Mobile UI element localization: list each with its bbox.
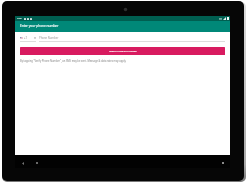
staticText: VERIFY PHONE NUMBER	[109, 49, 137, 52]
staticText: Phone Number	[39, 36, 59, 40]
staticText: 7:45	[17, 17, 22, 20]
button[interactable]: Recent apps	[219, 159, 227, 167]
staticText: Enter your phone number	[20, 24, 59, 28]
button[interactable]: VERIFY PHONE NUMBER	[20, 47, 225, 55]
staticText: By tapping "Verify Phone Number", an SMS…	[20, 59, 127, 62]
staticText: +1	[24, 36, 28, 40]
button[interactable]: +1	[20, 36, 36, 42]
button[interactable]: Phone Number	[39, 36, 225, 42]
button[interactable]: Home	[33, 159, 41, 167]
other: Select country code	[34, 37, 36, 39]
button[interactable]: Back	[19, 159, 27, 167]
